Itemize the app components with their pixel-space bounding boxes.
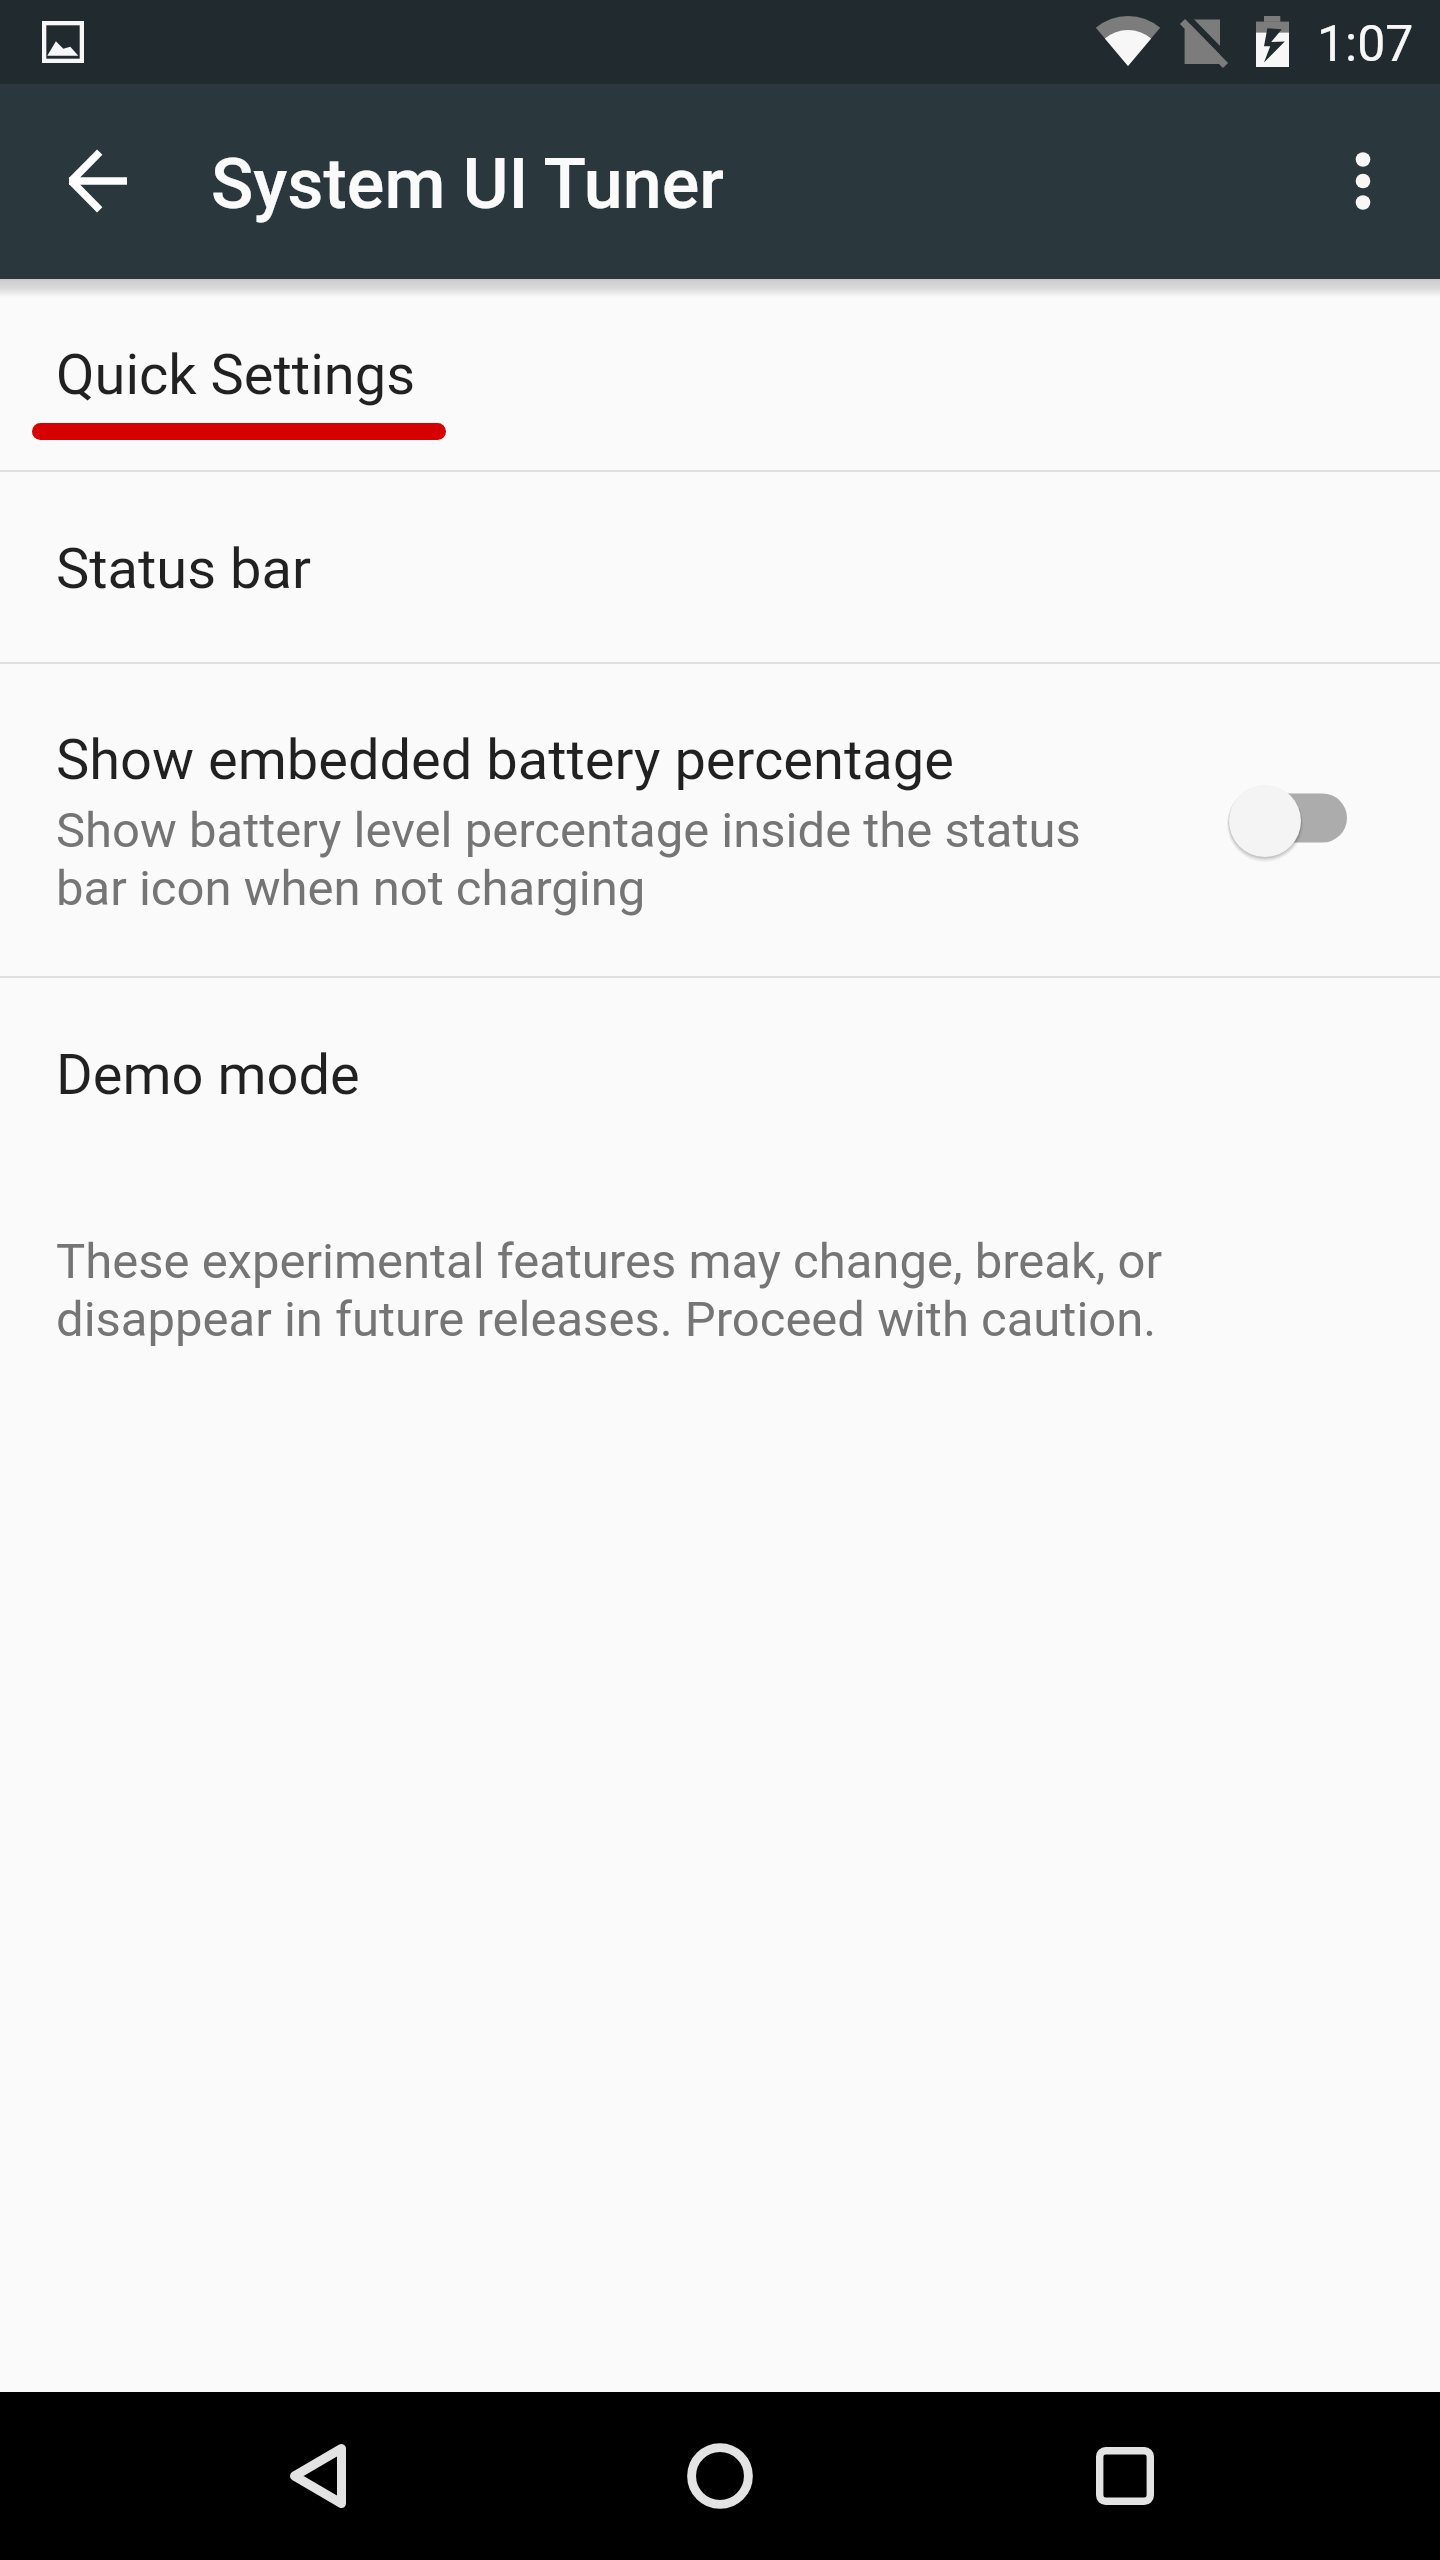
staticText: Quick Settings: [56, 342, 416, 408]
staticText: Show embedded battery percentage: [56, 727, 954, 793]
button[interactable]: More options: [1295, 113, 1431, 249]
staticText: Demo mode: [56, 1042, 360, 1108]
staticText: System UI Tuner: [211, 143, 724, 225]
button[interactable]: Demo mode: [0, 978, 1440, 1168]
button[interactable]: Status bar: [0, 472, 1440, 662]
button[interactable]: Home: [600, 2392, 840, 2560]
button[interactable]: Show embedded battery percentage: [0, 664, 1440, 976]
button[interactable]: Navigate up: [30, 113, 166, 249]
staticText: These experimental features may change, …: [56, 1233, 1236, 1347]
staticText: 1:07: [1317, 15, 1414, 74]
button[interactable]: Back: [198, 2392, 438, 2560]
button[interactable]: Show embedded battery percentage toggle: [1205, 761, 1375, 881]
button[interactable]: Quick Settings: [0, 288, 1440, 470]
staticText: Status bar: [56, 536, 311, 602]
button[interactable]: Recent apps: [1005, 2392, 1245, 2560]
staticText: Show battery level percentage inside the…: [56, 802, 1156, 916]
